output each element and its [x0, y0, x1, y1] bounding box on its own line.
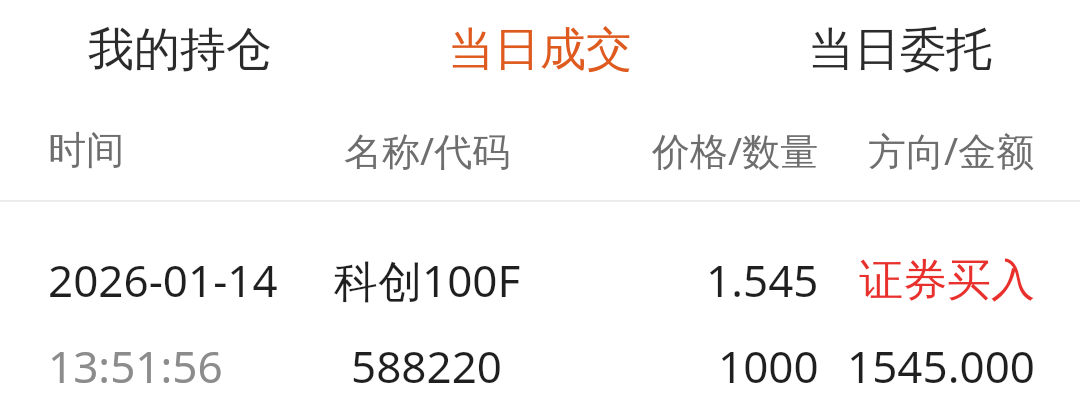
staticText: 2026-01-14	[48, 250, 278, 310]
button[interactable]: 我的持仓	[0, 0, 360, 100]
staticText: 1000	[718, 336, 819, 395]
staticText: 方向/金额	[868, 124, 1035, 176]
staticText: 1.545	[706, 250, 819, 310]
staticText: 证券买入	[859, 253, 1035, 308]
staticText: 价格/数量	[652, 124, 819, 176]
staticText: 当日委托	[808, 21, 992, 79]
staticText: 科创100F	[334, 250, 521, 310]
staticText: 时间	[48, 126, 124, 174]
staticText: 当日成交	[448, 21, 632, 79]
staticText: 588220	[351, 336, 503, 395]
button[interactable]: 当日成交	[360, 0, 720, 100]
staticText: 名称/代码	[344, 124, 511, 176]
button[interactable]: 2026-01-14	[0, 202, 1080, 395]
staticText: 1545.000	[847, 336, 1035, 395]
staticText: 我的持仓	[88, 21, 272, 79]
button[interactable]: 当日委托	[720, 0, 1080, 100]
staticText: 13:51:56	[48, 336, 223, 395]
